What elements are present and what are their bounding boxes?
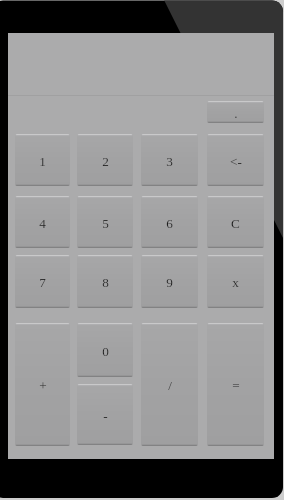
button[interactable]: 8 — [77, 255, 133, 308]
staticText: 7 — [39, 275, 46, 290]
button[interactable]: 6 — [141, 196, 198, 248]
button[interactable]: x — [207, 255, 264, 308]
button[interactable]: 4 — [15, 196, 70, 248]
staticText: - — [103, 408, 108, 423]
staticText: 3 — [166, 154, 173, 169]
staticText: = — [232, 378, 240, 393]
button[interactable]: 2 — [77, 134, 133, 186]
staticText: 8 — [102, 275, 109, 290]
staticText: 9 — [166, 275, 173, 290]
staticText: 2 — [102, 154, 109, 169]
staticText: C — [231, 216, 240, 231]
staticText: 5 — [102, 216, 109, 231]
button[interactable]: + — [15, 323, 70, 446]
staticText: <- — [230, 154, 242, 169]
button[interactable]: . — [207, 101, 264, 123]
staticText: / — [168, 378, 172, 393]
staticText: 4 — [39, 216, 46, 231]
button[interactable]: 3 — [141, 134, 198, 186]
staticText: 6 — [166, 216, 173, 231]
button[interactable]: <- — [207, 134, 264, 186]
staticText: . — [234, 106, 238, 121]
staticText: 1 — [39, 154, 46, 169]
button[interactable]: C — [207, 196, 264, 248]
staticText: + — [39, 378, 47, 393]
button[interactable]: - — [77, 384, 133, 445]
button[interactable]: 0 — [77, 323, 133, 377]
button[interactable]: 7 — [15, 255, 70, 308]
button[interactable]: 9 — [141, 255, 198, 308]
button[interactable]: / — [141, 323, 198, 446]
button[interactable]: 5 — [77, 196, 133, 248]
staticText: 0 — [102, 344, 109, 359]
button[interactable]: 1 — [15, 134, 70, 186]
staticText: x — [232, 275, 239, 290]
button[interactable]: = — [207, 323, 264, 446]
